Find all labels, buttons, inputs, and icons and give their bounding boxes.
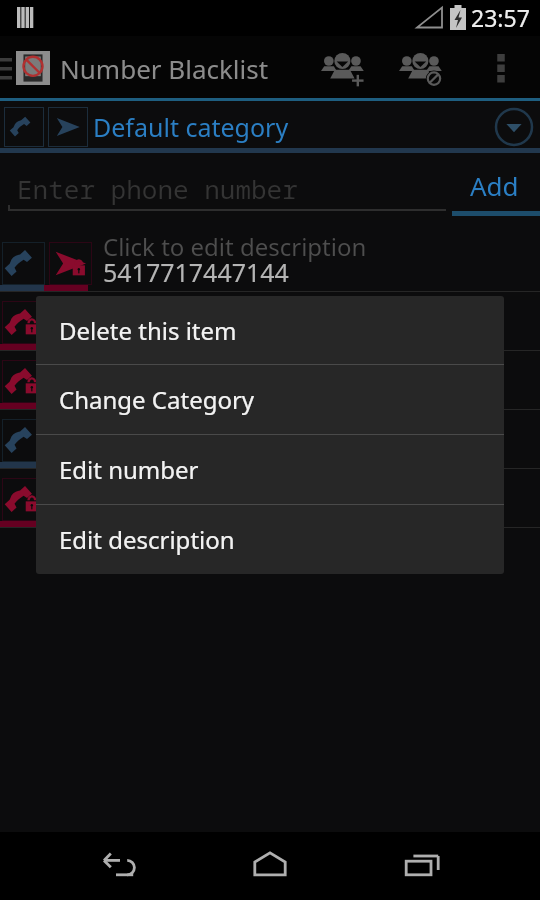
staticText: 5417717447144 (103, 255, 289, 289)
button[interactable]: Back (83, 832, 153, 900)
button[interactable] (0, 292, 540, 351)
button[interactable]: Add (448, 153, 540, 223)
button[interactable] (0, 351, 540, 410)
button[interactable]: Click to edit description (0, 233, 540, 292)
staticText: Delete this item (59, 314, 237, 347)
button[interactable]: Recents (388, 832, 458, 900)
button[interactable]: Block contacts (383, 36, 461, 101)
staticText: Number Blacklist (60, 51, 269, 86)
staticText: Click to edit description (103, 230, 367, 263)
button[interactable] (0, 469, 540, 528)
button[interactable]: Edit number (36, 435, 504, 504)
button[interactable]: Delete this item (36, 296, 504, 364)
staticText: Change Category (59, 383, 255, 416)
staticText: Add (470, 168, 519, 203)
button[interactable]: Change Category (36, 365, 504, 434)
button[interactable]: Edit description (36, 505, 504, 574)
staticText: Enter phone number (17, 171, 298, 206)
button[interactable]: Default category (0, 101, 540, 153)
staticText: 23:57 (471, 2, 530, 33)
button[interactable]: More options (461, 36, 540, 101)
staticText: Edit description (59, 523, 235, 556)
staticText: Default category (93, 110, 289, 144)
button[interactable] (0, 410, 540, 469)
button[interactable]: Home (235, 832, 305, 900)
staticText: Edit number (59, 453, 199, 486)
button[interactable]: Add contacts (305, 36, 383, 101)
